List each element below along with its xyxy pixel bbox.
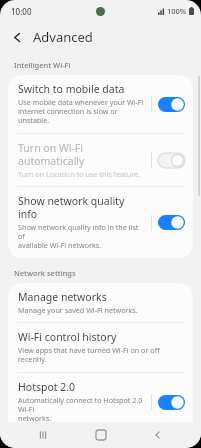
button[interactable]: Turn on Wi-Fi automatically — [8, 134, 193, 186]
staticText: Use mobile data whenever your Wi-Fi inte… — [18, 97, 146, 126]
staticText: Wi-Fi control history — [18, 330, 117, 344]
button[interactable]: Switch on — [158, 215, 185, 230]
button[interactable]: Switch on — [158, 395, 185, 410]
staticText: Switch to mobile data — [18, 82, 125, 96]
staticText: 10:00 — [11, 6, 32, 17]
button[interactable]: Show network quality info — [8, 187, 193, 258]
staticText: Turn on Location to use this feature. — [18, 169, 140, 179]
staticText: View apps that have turned Wi-Fi on or o… — [18, 345, 185, 365]
button[interactable]: Switch on — [158, 97, 185, 112]
button[interactable]: Recents — [28, 422, 58, 448]
button[interactable]: Hotspot 2.0 — [8, 373, 193, 431]
button[interactable]: Manage networks — [8, 283, 193, 322]
button[interactable]: Wi-Fi control history — [8, 323, 193, 372]
button[interactable]: Switch to mobile data — [8, 75, 193, 133]
staticText: Manage networks — [18, 290, 107, 304]
staticText: Turn on Wi-Fi automatically — [18, 141, 146, 168]
staticText: Show network quality info in the list of… — [18, 222, 146, 251]
staticText: Intelligent Wi-Fi — [14, 60, 71, 70]
staticText: Install network certificates — [18, 439, 149, 441]
staticText: Network settings — [14, 268, 76, 278]
staticText: Manage your saved Wi-Fi networks. — [18, 305, 138, 315]
staticText: 100% — [167, 6, 187, 16]
staticText: Advanced — [33, 28, 93, 46]
staticText: Hotspot 2.0 — [18, 380, 76, 394]
staticText: Show network quality info — [18, 194, 146, 221]
button[interactable]: Home — [86, 422, 116, 448]
staticText: Automatically connect to Hotspot 2.0 Wi-… — [18, 395, 146, 424]
button[interactable]: Switch off — [158, 153, 185, 168]
button[interactable]: Back — [143, 422, 173, 448]
button[interactable]: Install network certificates — [8, 432, 193, 448]
button[interactable]: Back — [4, 24, 30, 50]
